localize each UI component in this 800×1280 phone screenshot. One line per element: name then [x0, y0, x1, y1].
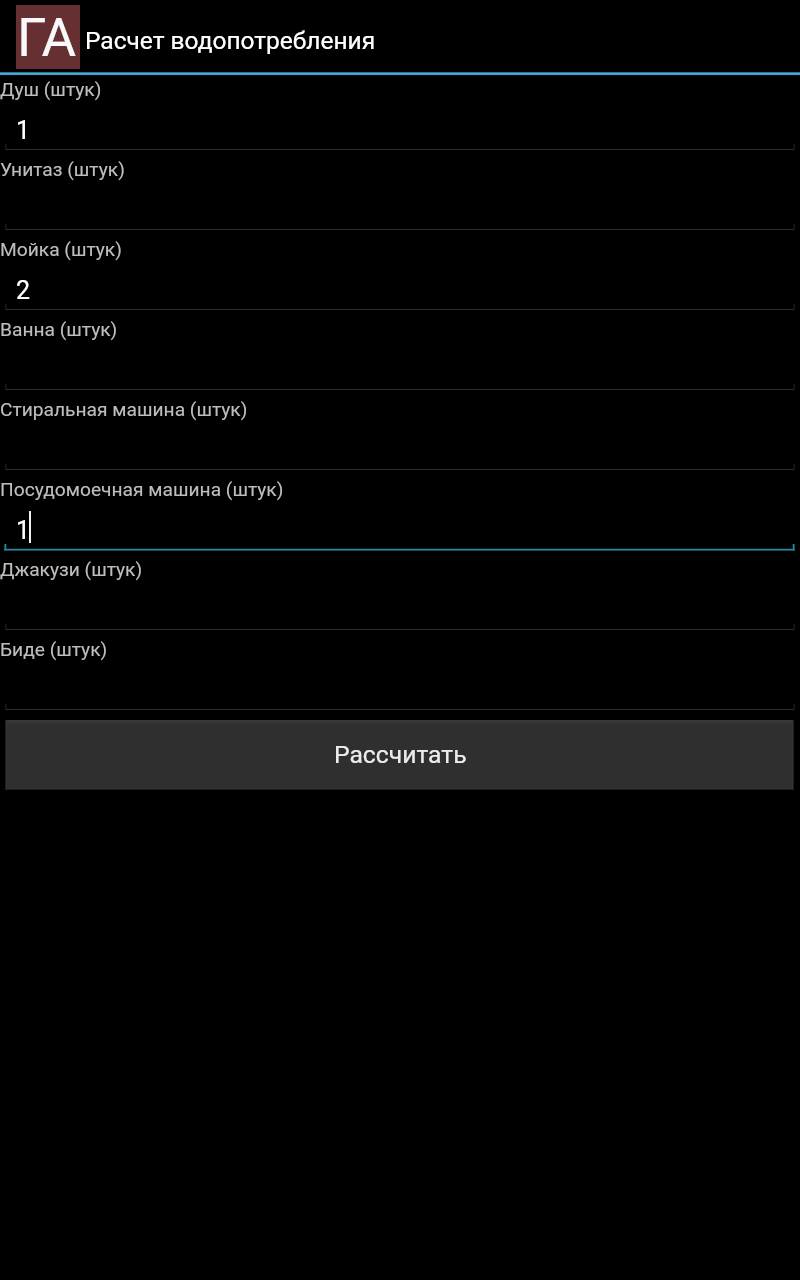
- button[interactable]: Унитаз (штук): [0, 158, 800, 238]
- staticText: Джакузи (штук): [0, 558, 143, 581]
- staticText: Стиральная машина (штук): [0, 398, 248, 421]
- staticText: Ванна (штук): [0, 318, 118, 341]
- button[interactable]: Посудомоечная машина (штук): [0, 478, 800, 558]
- button[interactable]: Стиральная машина (штук): [0, 398, 800, 478]
- button[interactable]: Рассчитать: [5, 720, 794, 790]
- button[interactable]: Ванна (штук): [0, 318, 800, 398]
- staticText: Расчет водопотребления: [85, 26, 376, 55]
- button[interactable]: Душ (штук): [0, 78, 800, 158]
- staticText: Душ (штук): [0, 78, 102, 101]
- staticText: 2: [16, 276, 31, 305]
- staticText: 1: [16, 116, 31, 145]
- button[interactable]: Биде (штук): [0, 638, 800, 718]
- button[interactable]: Мойка (штук): [0, 238, 800, 318]
- staticText: Рассчитать: [334, 740, 467, 769]
- staticText: 1: [16, 516, 31, 545]
- staticText: Биде (штук): [0, 638, 108, 661]
- staticText: ГА: [17, 7, 77, 69]
- staticText: Посудомоечная машина (штук): [0, 478, 284, 501]
- button[interactable]: App bar: [0, 0, 800, 72]
- staticText: Унитаз (штук): [0, 158, 125, 181]
- staticText: Мойка (штук): [0, 238, 122, 261]
- button[interactable]: Джакузи (штук): [0, 558, 800, 638]
